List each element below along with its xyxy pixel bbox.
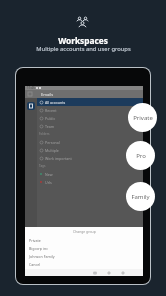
staticText: Private [29,238,41,243]
button[interactable]: Back [121,271,125,275]
staticText: Urls [45,180,52,185]
button[interactable]: Documents [27,102,35,110]
staticText: 11:45 [27,86,35,90]
button[interactable]: Johnson Family [25,252,143,260]
button[interactable]: Home [107,271,111,275]
button[interactable]: Work important [37,154,143,162]
staticText: Tags [39,164,46,168]
button[interactable]: Private [25,236,143,244]
staticText: Change group [73,229,96,234]
staticText: Recent [45,108,57,113]
button[interactable]: Bigcorp inc [25,244,143,252]
staticText: Public [45,116,56,121]
button[interactable]: Recent [37,106,143,114]
staticText: Folders [39,132,50,136]
staticText: Multiple [45,148,59,153]
button[interactable]: Cancel [25,260,143,268]
staticText: Work important [45,156,72,161]
button[interactable]: Pro [126,141,155,170]
staticText: Team [45,124,55,129]
staticText: Personal [45,140,60,145]
button[interactable]: New [37,170,143,178]
staticText: New [45,172,53,177]
button[interactable]: Team [37,122,143,130]
staticText: All accounts [45,100,66,105]
button[interactable]: All accounts [37,98,143,106]
staticText: Emails [41,92,54,97]
staticText: Workspaces [58,35,108,46]
button[interactable]: Urls [37,178,143,186]
staticText: Cancel [29,262,41,267]
button[interactable]: Multiple [37,146,143,154]
button[interactable]: Family [126,182,155,211]
button[interactable]: Public [37,114,143,122]
button[interactable]: Recents [93,271,97,275]
staticText: Bigcorp inc [29,246,48,251]
button[interactable]: Private [128,103,157,132]
staticText: Johnson Family [29,254,55,259]
staticText: Pro [136,152,146,160]
staticText: Private [133,114,153,122]
button[interactable]: Personal [37,138,143,146]
staticText: Family [131,193,150,201]
staticText: Multiple accounts and user groups [36,45,131,53]
